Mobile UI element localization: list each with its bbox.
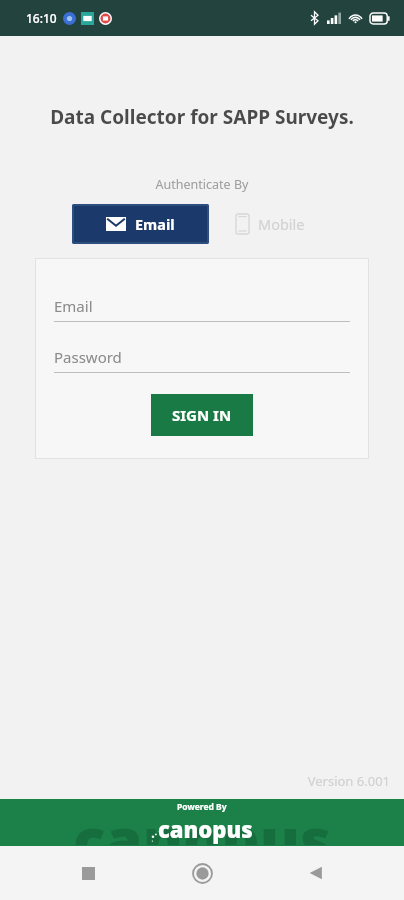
button[interactable]: Password bbox=[54, 347, 350, 373]
staticText: SIGN IN bbox=[172, 405, 232, 425]
staticText: canopus bbox=[158, 814, 253, 844]
staticText: Password bbox=[54, 347, 122, 367]
button[interactable]: Home bbox=[176, 847, 228, 899]
staticText: Mobile bbox=[258, 214, 305, 234]
button[interactable]: Email bbox=[54, 296, 350, 322]
button[interactable]: Back bbox=[290, 847, 342, 899]
staticText: 16:10 bbox=[26, 10, 57, 26]
staticText: Email bbox=[54, 296, 93, 316]
staticText: Data Collector for SAPP Surveys. bbox=[0, 104, 404, 130]
button[interactable]: Email bbox=[72, 204, 209, 244]
button[interactable]: Mobile bbox=[209, 204, 332, 244]
staticText: canopus bbox=[73, 799, 331, 845]
staticText: Powered By bbox=[177, 801, 227, 813]
button[interactable]: SIGN IN bbox=[151, 394, 253, 436]
staticText: Authenticate By bbox=[0, 176, 404, 193]
staticText: Email bbox=[135, 214, 175, 234]
button[interactable]: Recent apps bbox=[62, 847, 114, 899]
staticText: Version 6.001 bbox=[0, 772, 390, 790]
